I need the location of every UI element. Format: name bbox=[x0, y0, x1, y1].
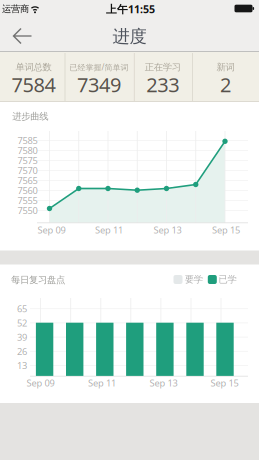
staticText: Sep 11 bbox=[95, 224, 123, 236]
staticText: 进步曲线 bbox=[12, 111, 48, 122]
staticText: 已学 bbox=[218, 274, 236, 285]
staticText: 已经掌握/简单词 bbox=[69, 62, 128, 72]
staticText: 52 bbox=[17, 317, 27, 329]
staticText: 65 bbox=[17, 302, 27, 315]
staticText: 7555 bbox=[17, 194, 37, 207]
staticText: 7584 bbox=[11, 71, 55, 98]
staticText: 上午11:55 bbox=[106, 2, 155, 16]
staticText: 13 bbox=[17, 359, 27, 372]
staticText: Sep 13 bbox=[153, 224, 181, 236]
staticText: Sep 13 bbox=[149, 377, 177, 389]
staticText: 7550 bbox=[17, 204, 37, 217]
staticText: 正在学习 bbox=[145, 61, 181, 73]
staticText: 7580 bbox=[17, 144, 37, 157]
staticText: 26 bbox=[17, 345, 27, 357]
staticText: 233 bbox=[146, 71, 179, 98]
staticText: 7349 bbox=[77, 71, 121, 98]
staticText: 7565 bbox=[17, 174, 37, 187]
staticText: 进度 bbox=[112, 26, 146, 47]
staticText: Sep 15 bbox=[210, 377, 238, 389]
staticText: 新词 bbox=[217, 61, 235, 73]
staticText: 7560 bbox=[17, 184, 37, 197]
button[interactable]: Back bbox=[5, 21, 41, 51]
staticText: Sep 15 bbox=[212, 224, 240, 236]
staticText: 7575 bbox=[17, 154, 37, 167]
staticText: 7585 bbox=[17, 134, 37, 147]
staticText: 7570 bbox=[17, 164, 37, 177]
staticText: 单词总数 bbox=[15, 61, 51, 73]
staticText: Sep 09 bbox=[37, 224, 65, 236]
staticText: 运营商 bbox=[2, 3, 29, 15]
staticText: 2 bbox=[220, 71, 231, 98]
staticText: Sep 11 bbox=[88, 377, 116, 389]
staticText: Sep 09 bbox=[26, 377, 54, 389]
staticText: 要学 bbox=[185, 274, 203, 285]
staticText: 39 bbox=[17, 331, 27, 343]
staticText: 每日复习盘点 bbox=[11, 274, 65, 286]
